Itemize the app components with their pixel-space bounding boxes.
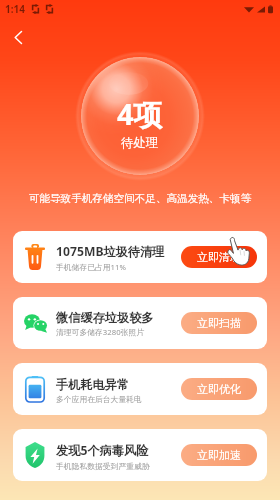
staticText: 立即加速 (197, 448, 241, 462)
staticText: 手机隐私数据受到严重威胁 (56, 461, 150, 471)
staticText: 微信缓存垃圾较多 (56, 310, 154, 325)
staticText: 清理可多储存3280张照片 (56, 327, 145, 338)
button[interactable]: 微信缓存垃圾较多 (13, 297, 267, 349)
staticText: 1:14 (5, 2, 25, 16)
staticText: 可能导致手机存储空间不足、高温发热、卡顿等 (0, 192, 280, 205)
button[interactable]: 立即加速 (181, 444, 257, 466)
staticText: 待处理 (121, 135, 159, 151)
staticText: 发现5个病毒风险 (56, 442, 149, 459)
button[interactable]: 手机耗电异常 (13, 363, 267, 415)
button[interactable]: 立即清理 (181, 246, 257, 268)
button[interactable]: 1075MB垃圾待清理 (13, 231, 267, 283)
staticText: 手机储存已占用11% (56, 262, 126, 273)
staticText: 4项 (117, 94, 163, 134)
button[interactable]: 立即优化 (181, 378, 257, 400)
button[interactable]: 发现5个病毒风险 (13, 429, 267, 481)
button[interactable]: Back (0, 22, 36, 52)
staticText: 立即优化 (197, 382, 241, 396)
staticText: 立即扫描 (197, 316, 241, 330)
button[interactable]: 立即扫描 (181, 312, 257, 334)
staticText: 多个应用在后台大量耗电 (56, 394, 142, 404)
staticText: 1075MB垃圾待清理 (56, 243, 165, 260)
staticText: 立即清理 (197, 250, 241, 264)
staticText: 手机耗电异常 (56, 377, 130, 392)
